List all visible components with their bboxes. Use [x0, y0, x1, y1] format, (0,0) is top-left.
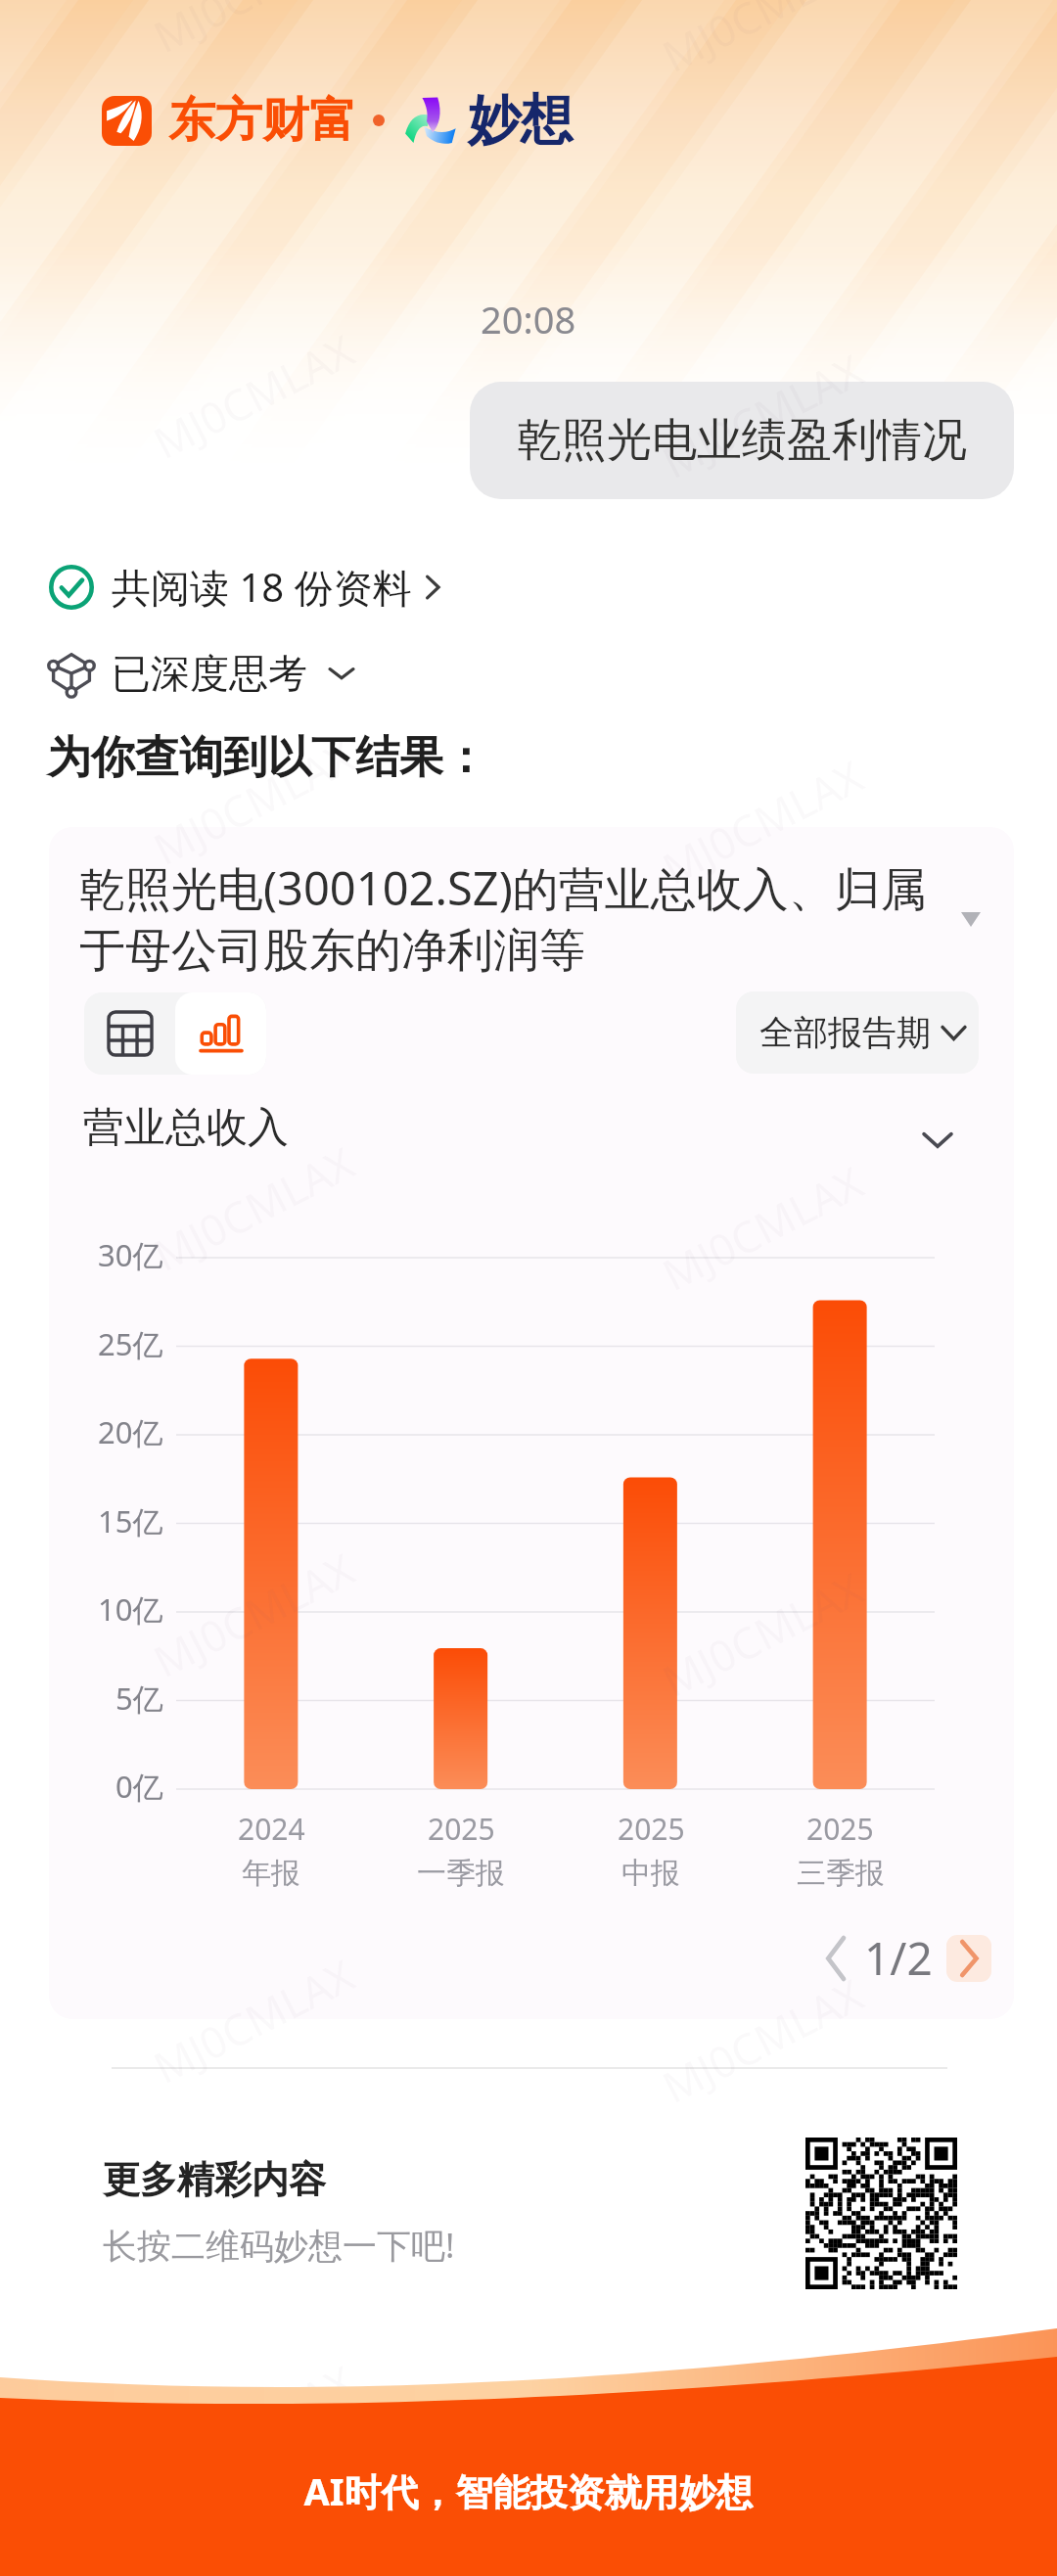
staticText: MJ0CMLAX: [143, 0, 363, 65]
staticText: MJ0CMLAX: [652, 1965, 872, 2116]
staticText: MJ0CMLAX: [652, 2371, 872, 2522]
staticText: MJ0CMLAX: [652, 1559, 872, 1710]
staticText: MJ0CMLAX: [652, 746, 872, 897]
button[interactable]: 乾照光电业绩盈利情况: [470, 382, 1014, 499]
staticText: MJ0CMLAX: [143, 1133, 363, 1284]
staticText: 15亿: [98, 1500, 163, 1541]
staticText: 2024: [238, 1809, 305, 1849]
staticText: 20:08: [481, 294, 576, 345]
button[interactable]: Table view: [84, 992, 175, 1075]
staticText: 为你查询到以下结果：: [47, 730, 487, 786]
staticText: 一季报: [417, 1855, 505, 1892]
staticText: MJ0CMLAX: [143, 1539, 363, 1690]
staticText: MJ0CMLAX: [143, 2351, 363, 2502]
button[interactable]: Chart view: [175, 992, 266, 1075]
staticText: 已深度思考: [112, 649, 307, 698]
button[interactable]: 全部报告期: [736, 991, 979, 1074]
staticText: 中报: [621, 1855, 680, 1892]
staticText: MJ0CMLAX: [652, 0, 872, 85]
staticText: 2025: [806, 1809, 874, 1849]
staticText: MJ0CMLAX: [143, 321, 363, 471]
staticText: 妙想: [468, 87, 574, 154]
staticText: 25亿: [98, 1323, 163, 1364]
staticText: 东方财富: [168, 91, 356, 150]
staticText: 10亿: [98, 1588, 163, 1630]
staticText: 全部报告期: [759, 1011, 931, 1054]
staticText: MJ0CMLAX: [652, 1152, 872, 1303]
staticText: 三季报: [797, 1855, 885, 1892]
staticText: 2025: [618, 1809, 685, 1849]
staticText: 乾照光电(300102.SZ)的营业总收入、归属 于母公司股东的净利润等: [79, 856, 999, 980]
staticText: MJ0CMLAX: [652, 340, 872, 491]
staticText: 20亿: [98, 1411, 163, 1452]
staticText: 年报: [242, 1855, 300, 1892]
staticText: 营业总收入: [83, 1102, 289, 1154]
staticText: 长按二维码妙想一下吧!: [103, 2222, 455, 2269]
button[interactable]: Previous page: [809, 1931, 864, 1986]
staticText: 1/2: [864, 1927, 933, 1989]
button[interactable]: Next page: [946, 1935, 991, 1982]
staticText: 乾照光电业绩盈利情况: [517, 412, 967, 469]
staticText: AI时代，智能投资就用妙想: [0, 2465, 1057, 2516]
staticText: 30亿: [98, 1234, 163, 1275]
button[interactable]: 共阅读 18 份资料: [49, 560, 441, 614]
staticText: 5亿: [115, 1678, 163, 1719]
staticText: 2025: [428, 1809, 495, 1849]
staticText: 0亿: [115, 1766, 163, 1807]
button[interactable]: 已深度思考: [49, 649, 356, 698]
staticText: 更多精彩内容: [103, 2156, 326, 2203]
staticText: 共阅读 18 份资料: [112, 560, 412, 614]
staticText: MJ0CMLAX: [143, 727, 363, 878]
staticText: MJ0CMLAX: [143, 1945, 363, 2096]
